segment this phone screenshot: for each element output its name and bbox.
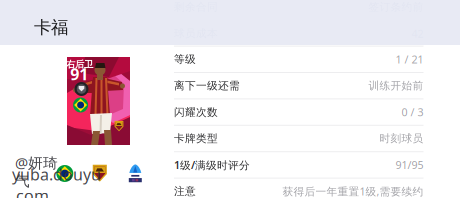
button[interactable]: 卡福 — [34, 16, 80, 38]
staticText: @妍琦气 — [15, 153, 58, 190]
staticText: yuba.douyu.com — [12, 164, 101, 198]
button[interactable]: 离下一级还需 — [174, 72, 423, 98]
staticText: 91/95 — [395, 158, 423, 172]
staticText: 1 / 21 — [395, 52, 423, 66]
button[interactable]: 等级 — [174, 46, 423, 72]
staticText: 91 — [70, 63, 88, 85]
staticText: 卡牌类型 — [174, 132, 218, 145]
button[interactable]: 闪耀次数 — [174, 98, 423, 125]
staticText: 时刻球员 — [379, 132, 423, 145]
staticText: 训练开始前 — [368, 79, 423, 92]
staticText: 0 / 3 — [401, 105, 423, 119]
button[interactable]: 卡牌类型 — [174, 125, 423, 151]
staticText: 卡福 — [34, 17, 68, 38]
button[interactable]: 注意 — [174, 178, 423, 198]
button[interactable]: 1级/满级时评分 — [174, 151, 423, 178]
staticText: 闪耀次数 — [174, 105, 218, 119]
staticText: 1级/满级时评分 — [174, 158, 250, 172]
staticText: 右后卫 — [66, 59, 93, 70]
staticText: 注意 — [174, 185, 196, 198]
staticText: 获得后一年重置1级,需要续约 — [282, 184, 423, 198]
staticText: 等级 — [174, 53, 196, 66]
staticText: 离下一级还需 — [174, 79, 240, 92]
